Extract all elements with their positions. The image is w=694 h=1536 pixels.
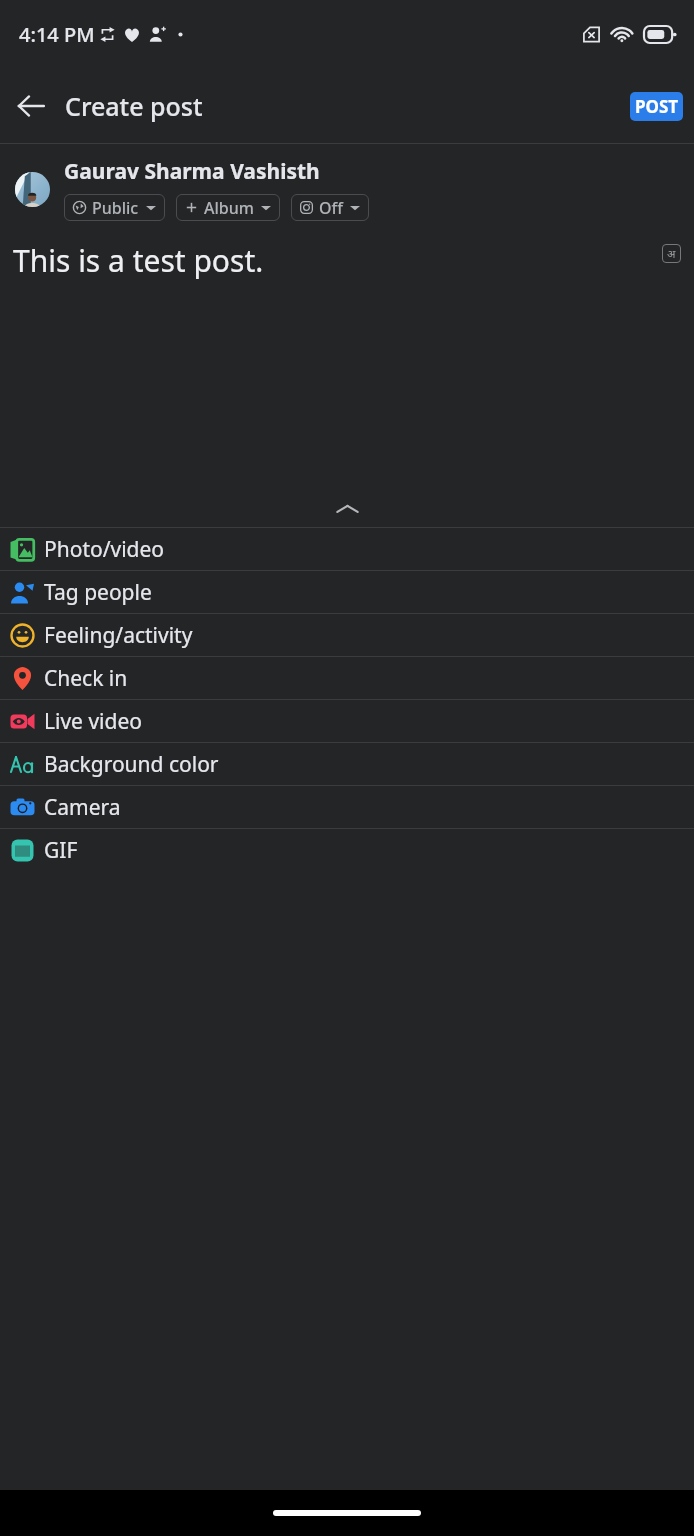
staticText: This is a test post. <box>13 240 662 281</box>
button[interactable]: GIF <box>0 829 694 871</box>
button[interactable]: Background color <box>0 743 694 785</box>
staticText: Create post <box>65 89 203 123</box>
staticText: Public <box>92 197 139 219</box>
button[interactable]: Check in <box>0 657 694 699</box>
staticText: 4:14 PM <box>19 21 95 48</box>
button[interactable]: Live video <box>0 700 694 742</box>
button[interactable]: Public <box>64 194 165 221</box>
staticText: Gaurav Sharma Vashisth <box>64 157 320 186</box>
button[interactable]: Language <box>662 244 681 263</box>
staticText: Photo/video <box>44 535 165 564</box>
button[interactable]: Back <box>0 75 62 137</box>
staticText: Check in <box>44 664 128 693</box>
button[interactable]: Camera <box>0 786 694 828</box>
staticText: Live video <box>44 707 142 736</box>
button[interactable]: Album <box>176 194 280 221</box>
staticText: GIF <box>44 836 78 865</box>
button[interactable]: Tag people <box>0 571 694 613</box>
button[interactable]: Photo/video <box>0 528 694 570</box>
button[interactable]: POST <box>630 92 683 121</box>
staticText: Camera <box>44 793 121 822</box>
staticText: Tag people <box>44 578 152 607</box>
button[interactable]: Feeling/activity <box>0 614 694 656</box>
staticText: Feeling/activity <box>44 621 193 650</box>
button[interactable]: Off <box>291 194 369 221</box>
staticText: Album <box>204 197 254 219</box>
button[interactable]: Profile photo <box>15 172 50 207</box>
staticText: Background color <box>44 750 219 779</box>
staticText: अ <box>667 246 676 261</box>
staticText: POST <box>635 95 679 118</box>
staticText: Off <box>319 197 343 219</box>
